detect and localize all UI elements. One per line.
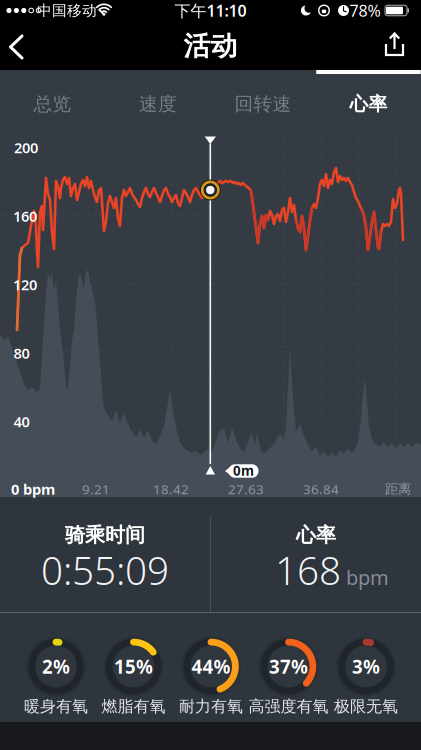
button[interactable]: 回转速	[211, 78, 316, 130]
staticText: 3%	[352, 654, 380, 679]
staticText: 下午11:10	[174, 0, 246, 21]
staticText: 15%	[114, 654, 153, 679]
staticText: 78%	[349, 0, 380, 21]
staticText: 极限无氧	[334, 697, 398, 716]
button[interactable]: 心率	[316, 78, 421, 130]
button[interactable]: 速度	[105, 78, 210, 130]
staticText: 0 bpm	[11, 479, 55, 499]
button[interactable]: Share	[372, 22, 416, 66]
staticText: 高强度有氧	[248, 697, 328, 716]
staticText: 中国移动	[37, 1, 97, 19]
staticText: 37%	[269, 654, 308, 679]
staticText: 120	[13, 275, 37, 294]
staticText: 距离	[385, 481, 411, 497]
staticText: 燃脂有氧	[101, 697, 165, 716]
staticText: 活动	[183, 30, 237, 62]
staticText: 18.42	[153, 480, 189, 498]
staticText: 9.21	[82, 480, 110, 498]
staticText: 200	[14, 138, 38, 157]
staticText: 心率	[349, 92, 387, 115]
staticText: 回转速	[235, 92, 292, 115]
staticText: 暖身有氧	[24, 697, 88, 716]
staticText: 耐力有氧	[179, 697, 243, 716]
button[interactable]: Back	[0, 25, 40, 69]
staticText: 160	[13, 206, 37, 226]
staticText: 80	[13, 343, 29, 363]
staticText: 168	[275, 544, 341, 596]
staticText: bpm	[346, 564, 389, 591]
staticText: 40	[13, 412, 29, 431]
staticText: 0m	[233, 462, 254, 479]
staticText: 36.84	[303, 480, 339, 498]
staticText: 2%	[42, 654, 70, 679]
staticText: 0:55:09	[41, 544, 169, 596]
staticText: 心率	[296, 523, 336, 547]
button[interactable]: 总览	[0, 78, 105, 130]
staticText: 总览	[34, 92, 72, 115]
staticText: 27.63	[228, 480, 264, 498]
staticText: 骑乘时间	[65, 523, 145, 547]
staticText: 44%	[191, 654, 230, 679]
staticText: 速度	[139, 92, 177, 115]
